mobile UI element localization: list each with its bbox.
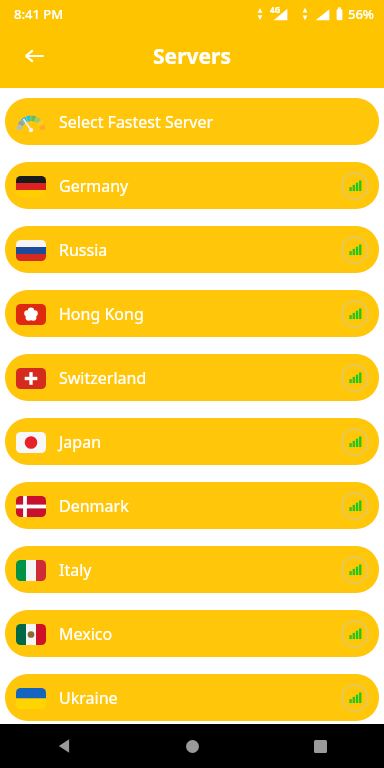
staticText: 8:41 PM xyxy=(14,5,64,23)
staticText: Select Fastest Server xyxy=(59,111,214,133)
button[interactable]: Ukraine xyxy=(5,674,379,721)
button[interactable]: Select Fastest Server xyxy=(5,98,379,145)
staticText: Servers xyxy=(0,42,384,71)
button[interactable]: Switzerland xyxy=(5,354,379,401)
staticText: Mexico xyxy=(59,623,113,645)
button[interactable]: Italy xyxy=(5,546,379,593)
button[interactable]: Back xyxy=(0,724,128,768)
staticText: Denmark xyxy=(59,495,129,517)
staticText: Switzerland xyxy=(59,367,147,389)
button[interactable]: Mexico xyxy=(5,610,379,657)
staticText: Russia xyxy=(59,239,108,261)
staticText: 4G xyxy=(270,4,281,15)
button[interactable]: Russia xyxy=(5,226,379,273)
button[interactable]: Germany xyxy=(5,162,379,209)
button[interactable]: Japan xyxy=(5,418,379,465)
button[interactable]: Denmark xyxy=(5,482,379,529)
button[interactable]: Hong Kong xyxy=(5,290,379,337)
button[interactable]: Home xyxy=(128,724,256,768)
staticText: Germany xyxy=(59,175,129,197)
staticText: Italy xyxy=(59,559,92,581)
button[interactable]: Back xyxy=(12,34,56,78)
staticText: 56% xyxy=(348,5,374,23)
staticText: Hong Kong xyxy=(59,303,144,325)
staticText: Japan xyxy=(59,431,102,453)
staticText: Ukraine xyxy=(59,687,118,709)
button[interactable]: Recent apps xyxy=(256,724,384,768)
